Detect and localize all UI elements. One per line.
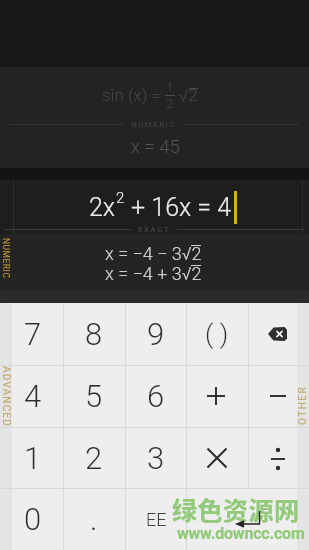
staticText: ADVANCED bbox=[0, 366, 12, 427]
staticText: ( ) bbox=[205, 319, 229, 349]
staticText: 2 bbox=[166, 96, 174, 111]
button[interactable]: 7 bbox=[2, 303, 64, 365]
button[interactable] bbox=[248, 365, 309, 427]
staticText: EE bbox=[146, 509, 167, 530]
staticText: EXACT bbox=[131, 225, 177, 234]
button[interactable]: 9 bbox=[125, 303, 187, 365]
button[interactable]: 1 bbox=[2, 427, 64, 489]
staticText: x = 45 bbox=[131, 136, 180, 158]
staticText: 9 bbox=[147, 316, 165, 352]
button[interactable]: 3 bbox=[125, 427, 187, 489]
button[interactable]: 2 bbox=[63, 427, 125, 489]
staticText: √2 bbox=[179, 85, 198, 105]
staticText: NUMERIC bbox=[124, 120, 184, 129]
button[interactable]: 6 bbox=[125, 365, 187, 427]
staticText: 绿色资源网 bbox=[172, 491, 300, 527]
staticText: OTHER bbox=[297, 385, 309, 425]
button[interactable] bbox=[186, 365, 248, 427]
button[interactable]: . bbox=[63, 488, 125, 550]
staticText: 2 bbox=[116, 189, 125, 207]
button[interactable]: 4 bbox=[2, 365, 64, 427]
button[interactable] bbox=[233, 508, 263, 528]
staticText: www.downcc.com bbox=[177, 524, 305, 543]
button[interactable] bbox=[268, 327, 287, 341]
staticText: sin (x) = bbox=[102, 85, 165, 105]
staticText: 3 bbox=[147, 440, 165, 476]
staticText: 8 bbox=[85, 316, 103, 352]
staticText: 7 bbox=[24, 316, 42, 352]
button[interactable]: EE bbox=[125, 488, 187, 550]
staticText: NUMERIC bbox=[1, 238, 11, 279]
button[interactable]: 5 bbox=[63, 365, 125, 427]
button[interactable]: ( ) bbox=[186, 303, 248, 365]
staticText: 5 bbox=[85, 378, 103, 414]
button[interactable]: 8 bbox=[63, 303, 125, 365]
button[interactable] bbox=[248, 488, 309, 550]
staticText: 2 bbox=[85, 440, 103, 476]
button[interactable]: 0 bbox=[2, 488, 64, 550]
staticText: x = −4 + 3√2 bbox=[105, 263, 202, 284]
button[interactable] bbox=[186, 488, 248, 550]
staticText: . bbox=[90, 501, 98, 537]
staticText: + 16x = 4 bbox=[125, 193, 232, 222]
staticText: x = −4 − 3√2 bbox=[105, 243, 202, 264]
button[interactable] bbox=[248, 303, 309, 365]
staticText: 4 bbox=[24, 378, 42, 414]
staticText: 2x bbox=[89, 193, 116, 222]
staticText: 1 bbox=[24, 440, 42, 476]
button[interactable] bbox=[248, 427, 309, 489]
staticText: 6 bbox=[147, 378, 165, 414]
staticText: 1 bbox=[166, 80, 174, 95]
staticText: 0 bbox=[24, 501, 42, 537]
button[interactable] bbox=[186, 427, 248, 489]
